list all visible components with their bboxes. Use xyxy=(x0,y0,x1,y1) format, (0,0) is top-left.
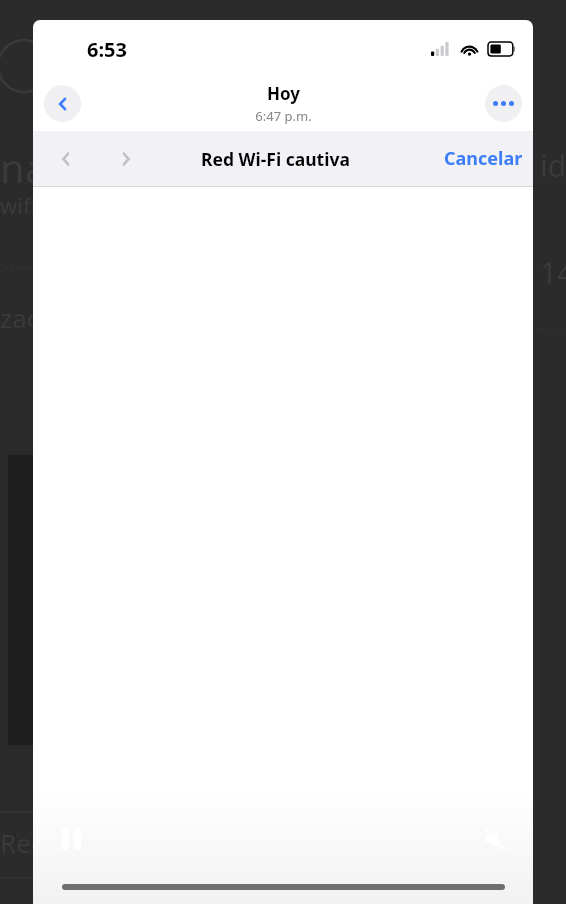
staticText: Ree xyxy=(0,825,46,860)
staticText: 14 xyxy=(540,252,566,293)
staticText: ido xyxy=(540,145,566,186)
staticText: 6:53 xyxy=(87,36,127,63)
button[interactable]: Cancelar xyxy=(444,146,523,171)
staticText: 6:47 p.m. xyxy=(255,107,312,125)
staticText: Cancelar xyxy=(444,146,523,171)
button[interactable]: Page forward xyxy=(111,144,141,174)
button[interactable]: Page back xyxy=(51,144,81,174)
staticText: Hoy xyxy=(267,82,300,105)
button[interactable]: More options xyxy=(485,85,522,122)
button[interactable]: Back xyxy=(44,85,81,122)
staticText: wifi. xyxy=(0,190,43,220)
staticText: zac xyxy=(0,300,40,335)
staticText: Red Wi-Fi cautiva xyxy=(201,147,350,171)
staticText: ná xyxy=(0,140,48,194)
